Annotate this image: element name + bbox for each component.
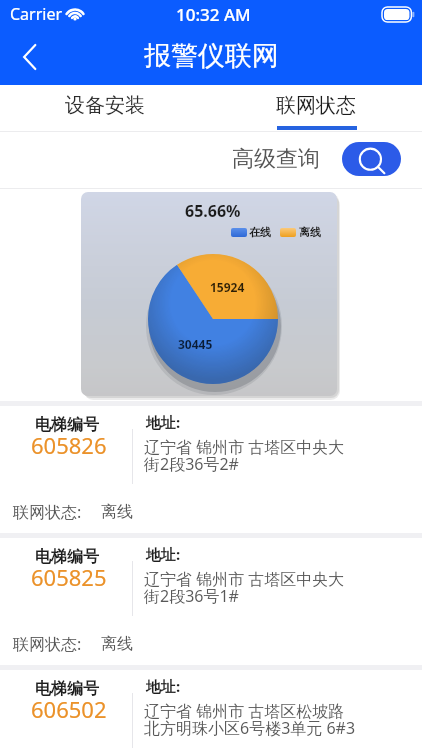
button[interactable]: 电梯编号 [0,538,422,622]
staticText: 街2段36号2# [144,453,239,475]
staticText: 离线 [299,225,321,239]
staticText: 605825 [31,562,107,592]
staticText: 地址: [146,676,181,696]
button[interactable]: 设备安装 [56,85,154,125]
staticText: 设备安装 [65,93,145,118]
staticText: 街2段36号1# [144,585,239,607]
staticText: 地址: [146,412,181,432]
staticText: 65.66% [185,200,241,222]
staticText: 联网状态 [276,93,356,118]
staticText: 地址: [146,544,181,564]
button[interactable]: 电梯编号 [0,406,422,490]
staticText: 离线 [101,502,133,522]
staticText: 北方明珠小区6号楼3单元 6#3 [144,717,356,739]
staticText: 联网状态: [13,501,82,523]
button[interactable]: 联网状态: [0,622,422,665]
button[interactable]: 联网状态: [0,490,422,533]
staticText: 605826 [31,430,107,460]
staticText: 在线 [249,225,271,239]
staticText: 电梯编号 [35,679,99,699]
staticText: 辽宁省 锦州市 古塔区中央大 [144,568,345,590]
staticText: 联网状态: [13,633,82,655]
staticText: 30445 [178,336,213,352]
staticText: 10:32 AM [176,3,251,26]
staticText: 离线 [101,634,133,654]
staticText: 电梯编号 [35,415,99,435]
staticText: 辽宁省 锦州市 古塔区松坡路 [144,700,345,722]
button[interactable]: Search [342,142,401,176]
staticText: 606502 [31,694,107,724]
staticText: 报警仪联网 [144,39,279,73]
button[interactable]: 电梯编号 [0,670,422,750]
button[interactable]: 联网状态 [267,85,365,125]
button[interactable]: Back [8,35,52,79]
staticText: 辽宁省 锦州市 古塔区中央大 [144,436,345,458]
staticText: 高级查询 [232,145,320,173]
staticText: Carrier [10,3,63,25]
staticText: 15924 [210,279,245,295]
staticText: 电梯编号 [35,547,99,567]
